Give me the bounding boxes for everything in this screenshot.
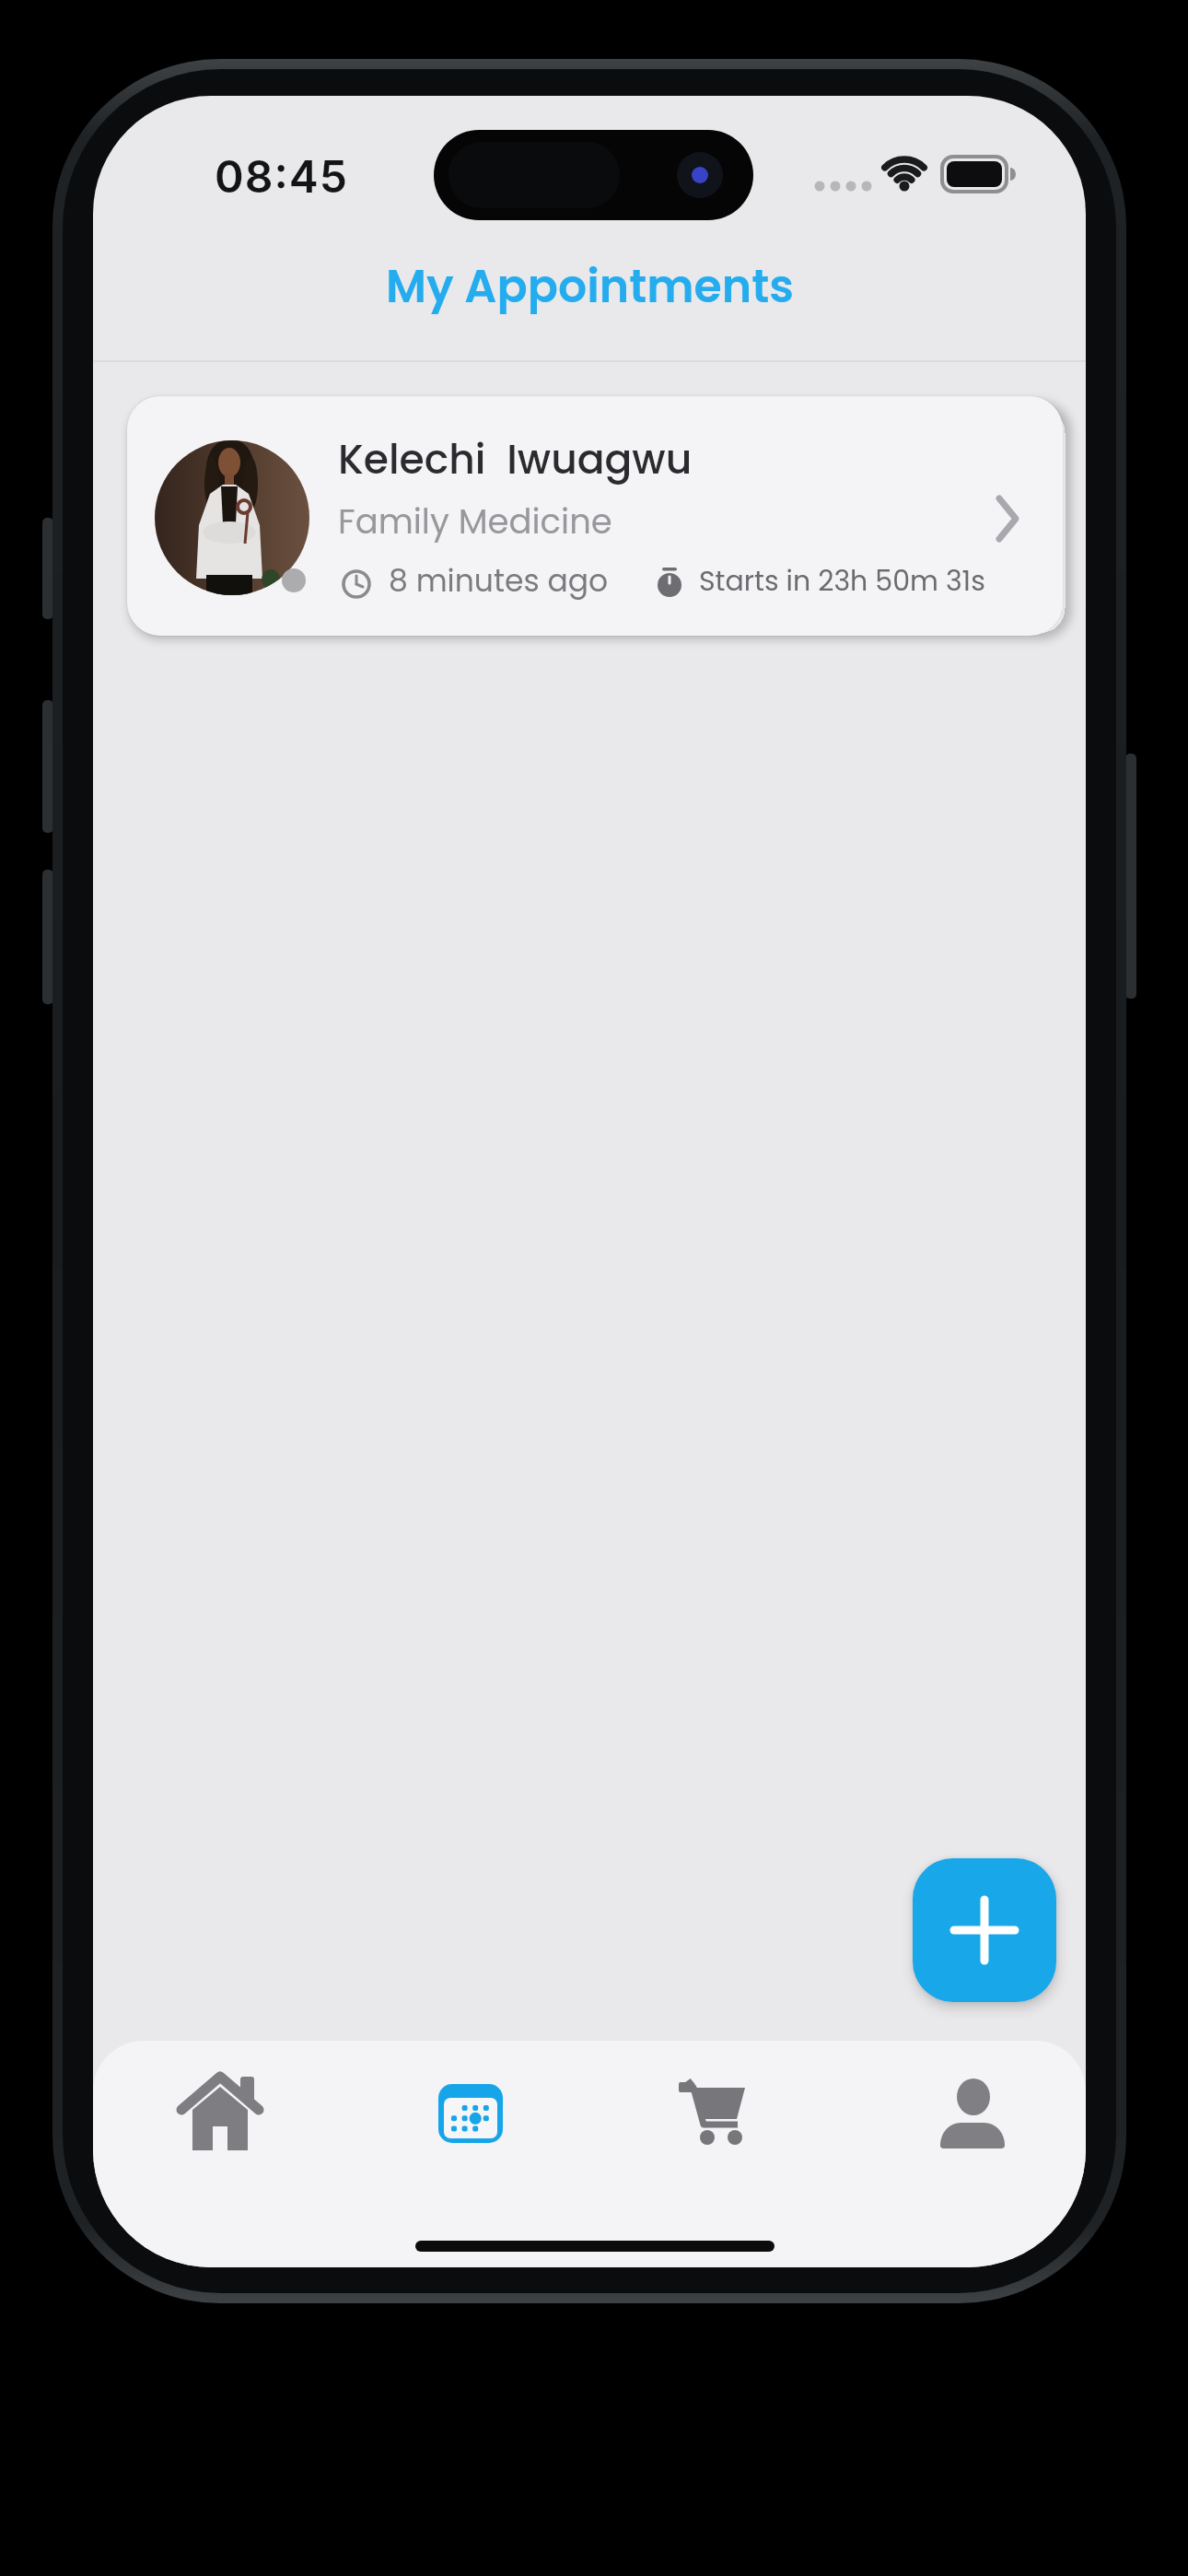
staticText: Family Medicine: [338, 498, 612, 545]
staticText: 8 minutes ago: [389, 559, 609, 602]
button[interactable]: [165, 2058, 275, 2169]
staticText: My Appointments: [386, 255, 794, 319]
button[interactable]: [660, 2058, 771, 2169]
button[interactable]: [917, 2058, 1028, 2169]
button[interactable]: [913, 1858, 1056, 2002]
staticText: Kelechi Iwuagwu: [338, 431, 693, 488]
button[interactable]: [415, 2058, 526, 2169]
button[interactable]: Kelechi Iwuagwu: [127, 396, 1063, 636]
staticText: 08:45: [215, 149, 348, 203]
staticText: Starts in 23h 50m 31s: [699, 562, 985, 601]
